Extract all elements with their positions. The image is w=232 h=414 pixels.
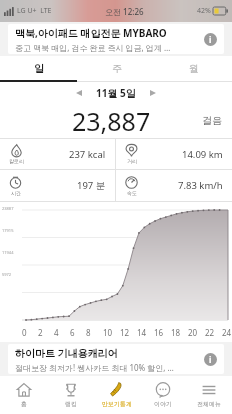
button[interactable]: 광고 정보 (204, 33, 217, 46)
staticText: 12 (120, 327, 130, 338)
staticText: 절대보장 최저가! 쎙사카드 최대 10% 할인, … (15, 362, 174, 373)
button[interactable]: 속도 (116, 170, 232, 201)
staticText: 197 분 (77, 179, 106, 192)
button[interactable]: 주 (78, 56, 155, 80)
button[interactable]: 이야기 (140, 376, 186, 414)
staticText: 오전 12:26 (105, 6, 144, 17)
staticText: 4 (54, 327, 59, 338)
staticText: 5972 (2, 272, 12, 277)
staticText: 24 (222, 327, 232, 338)
staticText: 0 (22, 327, 27, 338)
staticText: 6 (70, 327, 75, 338)
staticText: 칼로리 (9, 158, 24, 164)
staticText: 2 (38, 327, 43, 338)
staticText: 23,887 (72, 104, 151, 138)
button[interactable]: 칼로리 (0, 139, 115, 169)
staticText: 18 (171, 327, 181, 338)
staticText: 중고 맥북 매입, 검수 완료 즉시 입금, 업계 … (15, 42, 171, 53)
staticText: 랭킹 (65, 400, 77, 408)
staticText: 월 (189, 62, 199, 75)
staticText: 8 (86, 327, 91, 338)
staticText: 일 (34, 62, 44, 75)
staticText: 이야기 (154, 400, 172, 408)
button[interactable]: 홈 (0, 376, 47, 414)
button[interactable]: 일 (0, 56, 78, 80)
staticText: i (209, 354, 212, 365)
button[interactable]: 랭킹 (47, 376, 94, 414)
button[interactable]: 맥북,아이패드 매입전문 MYBARO (8, 24, 224, 54)
staticText: 16 (154, 327, 164, 338)
staticText: 14.09 km (182, 148, 223, 161)
staticText: 237 kcal (69, 148, 106, 161)
staticText: 걸음 (202, 114, 222, 127)
button[interactable]: 하이마트 기내용캐리어 (8, 344, 224, 374)
staticText: 시간 (11, 190, 21, 196)
button[interactable]: 이전 날짜 (70, 84, 88, 102)
button[interactable]: 시간 (0, 170, 115, 201)
staticText: i (209, 34, 212, 45)
staticText: 23887 (2, 206, 14, 211)
staticText: 홈 (21, 400, 27, 408)
staticText: 42% (197, 6, 211, 16)
staticText: 주 (112, 62, 122, 75)
button[interactable]: 거리 (116, 139, 232, 169)
staticText: 맥북,아이패드 매입전문 MYBARO (15, 26, 167, 40)
staticText: 17915 (2, 228, 14, 233)
staticText: 속도 (127, 190, 137, 196)
staticText: 14 (137, 327, 147, 338)
staticText: 만보기통계 (102, 400, 132, 408)
staticText: 7.83 km/h (178, 179, 223, 192)
staticText: 10 (103, 327, 113, 338)
button[interactable]: 광고 정보 (204, 353, 217, 366)
staticText: 11월 5일 (96, 86, 136, 100)
staticText: LG U+ LTE (17, 6, 52, 16)
staticText: 전체메뉴 (197, 400, 221, 408)
button[interactable]: 만보기통계 (94, 376, 140, 414)
staticText: 하이마트 기내용캐리어 (15, 346, 118, 360)
staticText: 20 (188, 327, 198, 338)
staticText: 거리 (127, 158, 137, 164)
button[interactable]: 전체메뉴 (186, 376, 232, 414)
staticText: 22 (205, 327, 215, 338)
button[interactable]: 다음 날짜 (144, 84, 162, 102)
staticText: 11944 (2, 250, 14, 255)
button[interactable]: 월 (155, 56, 232, 80)
